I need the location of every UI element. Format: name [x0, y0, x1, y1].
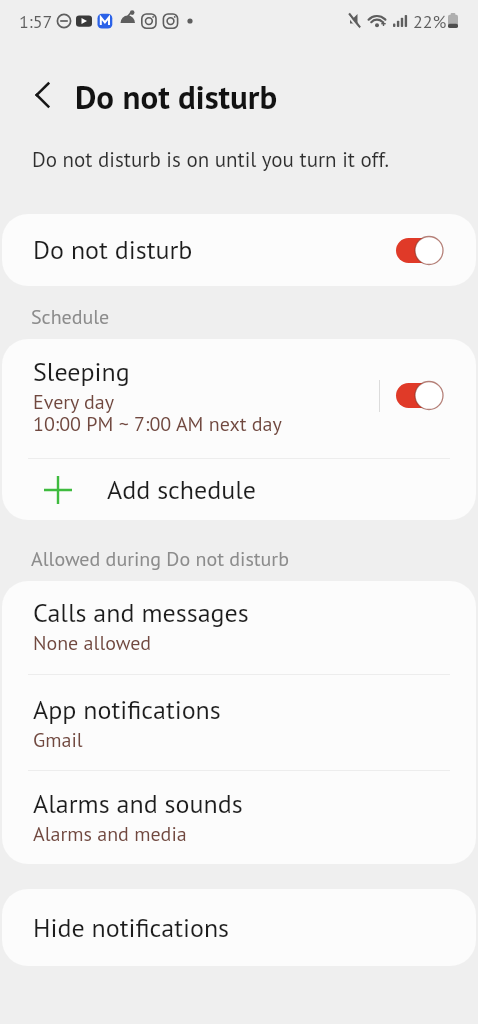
button[interactable]: Calls and messages	[2, 581, 476, 674]
staticText: 22%	[413, 10, 447, 33]
staticText: Gmail	[33, 727, 83, 753]
button[interactable]: Sleeping	[2, 339, 476, 458]
staticText: Add schedule	[107, 473, 257, 507]
button[interactable]: App notifications	[2, 675, 476, 770]
button[interactable]: Alarms and sounds	[2, 771, 476, 864]
staticText: 10:00 PM ~ 7:00 AM next day	[33, 411, 282, 437]
button[interactable]: Navigate up	[20, 74, 62, 116]
staticText: 1:57	[19, 10, 53, 33]
staticText: Alarms and media	[33, 821, 187, 847]
staticText: Do not disturb	[33, 233, 396, 267]
button[interactable]: Do not disturb	[2, 214, 476, 286]
staticText: Do not disturb is on until you turn it o…	[32, 146, 389, 173]
staticText: Alarms and sounds	[33, 787, 243, 821]
staticText: Allowed during Do not disturb	[31, 546, 289, 572]
staticText: Every day	[33, 389, 115, 415]
staticText: None allowed	[33, 630, 152, 656]
staticText: App notifications	[33, 693, 221, 727]
staticText: Schedule	[31, 304, 110, 330]
button[interactable]: Hide notifications	[2, 889, 476, 966]
staticText: Sleeping	[33, 355, 130, 389]
button[interactable]: Add schedule	[2, 459, 476, 520]
staticText: Hide notifications	[33, 911, 230, 945]
staticText: Do not disturb	[75, 75, 278, 118]
staticText: Calls and messages	[33, 596, 249, 630]
